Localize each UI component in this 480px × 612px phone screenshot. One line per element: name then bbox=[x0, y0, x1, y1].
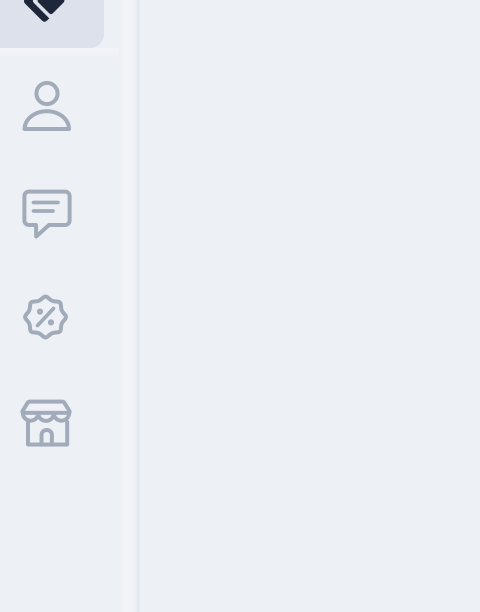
button[interactable]: Account bbox=[0, 69, 99, 141]
button[interactable]: Store bbox=[0, 387, 98, 459]
button[interactable]: Messages bbox=[0, 177, 99, 249]
button[interactable]: Tags bbox=[0, 0, 104, 48]
button[interactable]: Deals bbox=[0, 281, 97, 353]
